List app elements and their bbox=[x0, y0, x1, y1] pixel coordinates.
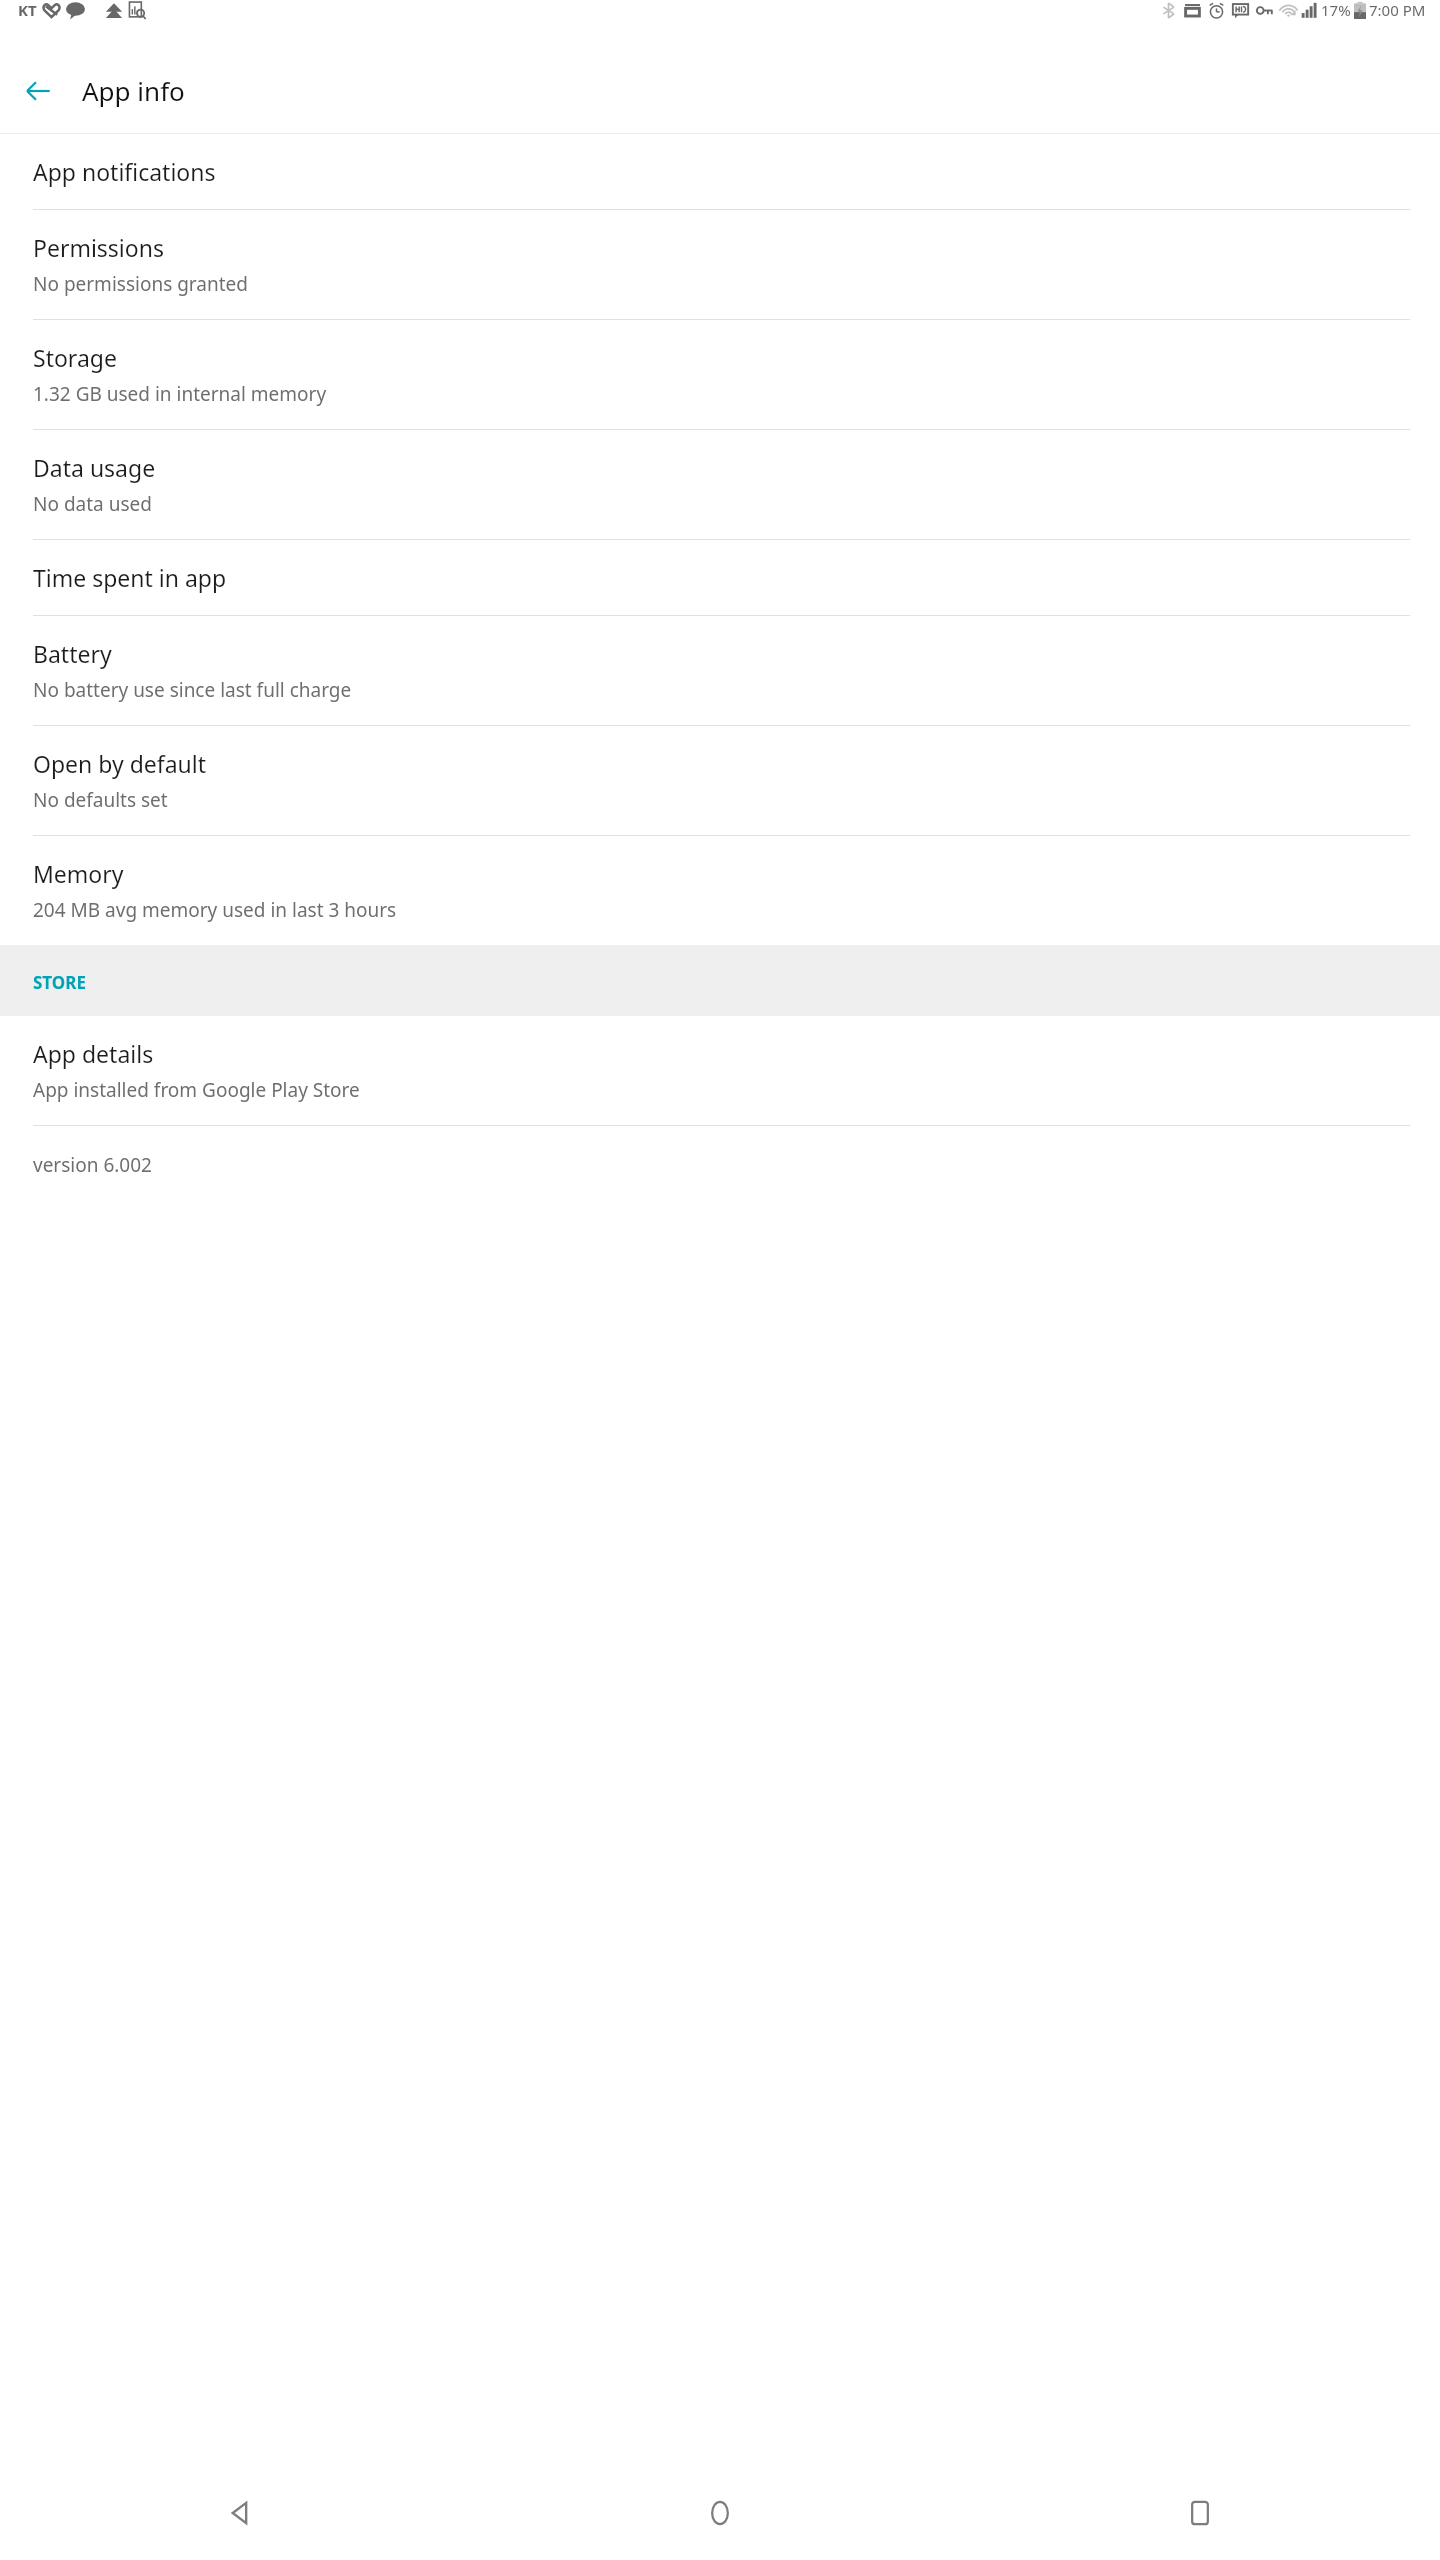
button[interactable]: Storage bbox=[0, 320, 1440, 429]
staticText: Memory bbox=[33, 858, 124, 889]
staticText: 1.32 GB used in internal memory bbox=[33, 381, 327, 407]
staticText: KT bbox=[18, 0, 37, 20]
staticText: Storage bbox=[33, 342, 117, 373]
button[interactable]: App notifications bbox=[0, 134, 1440, 209]
staticText: App info bbox=[82, 73, 185, 108]
staticText: App details bbox=[33, 1038, 154, 1069]
staticText: STORE bbox=[33, 971, 86, 994]
staticText: Time spent in app bbox=[33, 562, 227, 593]
staticText: No battery use since last full charge bbox=[33, 677, 352, 703]
button[interactable]: Open by default bbox=[0, 726, 1440, 835]
staticText: 204 MB avg memory used in last 3 hours bbox=[33, 897, 397, 923]
staticText: App notifications bbox=[33, 156, 216, 187]
staticText: Data usage bbox=[33, 452, 156, 483]
staticText: No data used bbox=[33, 491, 152, 517]
button[interactable]: Permissions bbox=[0, 210, 1440, 319]
button[interactable]: Back bbox=[0, 2466, 480, 2560]
staticText: Battery bbox=[33, 638, 112, 669]
staticText: Open by default bbox=[33, 748, 207, 779]
staticText: App installed from Google Play Store bbox=[33, 1077, 360, 1103]
button[interactable]: Battery bbox=[0, 616, 1440, 725]
staticText: version 6.002 bbox=[33, 1152, 152, 1178]
staticText: No permissions granted bbox=[33, 271, 248, 297]
button[interactable]: App details bbox=[0, 1016, 1440, 1125]
staticText: No defaults set bbox=[33, 787, 168, 813]
button[interactable]: Back bbox=[12, 65, 64, 117]
button[interactable]: Time spent in app bbox=[0, 540, 1440, 615]
button[interactable]: Memory bbox=[0, 836, 1440, 945]
button[interactable]: Recent apps bbox=[960, 2466, 1440, 2560]
staticText: 17% bbox=[1321, 0, 1351, 20]
button[interactable]: Home bbox=[480, 2466, 960, 2560]
staticText: Permissions bbox=[33, 232, 164, 263]
button[interactable]: Data usage bbox=[0, 430, 1440, 539]
staticText: 7:00 PM bbox=[1369, 0, 1426, 20]
